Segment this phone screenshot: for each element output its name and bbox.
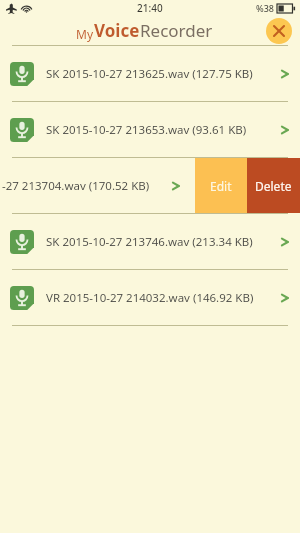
staticText: Delete (255, 178, 292, 194)
staticText: SK 2015-10-27 213625.wav (127.75 KB) (46, 66, 278, 82)
staticText: SK 2015-10-27 213746.wav (213.34 KB) (46, 234, 278, 250)
button[interactable]: SK 2015-10-27 213625.wav (127.75 KB) (0, 46, 300, 101)
button[interactable]: Edit (195, 158, 247, 213)
button[interactable]: Close (266, 18, 292, 44)
staticText: Recorder (140, 19, 213, 42)
staticText: -27 213704.wav (170.52 KB) (2, 178, 169, 194)
button[interactable]: -27 213704.wav (170.52 KB) (0, 158, 195, 213)
button[interactable]: SK 2015-10-27 213653.wav (93.61 KB) (0, 102, 300, 157)
staticText: %38 (256, 2, 274, 14)
staticText: SK 2015-10-27 213653.wav (93.61 KB) (46, 122, 278, 138)
staticText: Edit (210, 178, 232, 194)
staticText: My (76, 26, 94, 42)
staticText: 21:40 (137, 1, 163, 15)
staticText: VR 2015-10-27 214032.wav (146.92 KB) (46, 290, 278, 306)
button[interactable]: VR 2015-10-27 214032.wav (146.92 KB) (0, 270, 300, 325)
button[interactable]: Delete (247, 158, 300, 213)
button[interactable]: SK 2015-10-27 213746.wav (213.34 KB) (0, 214, 300, 269)
staticText: Voice (94, 19, 140, 42)
